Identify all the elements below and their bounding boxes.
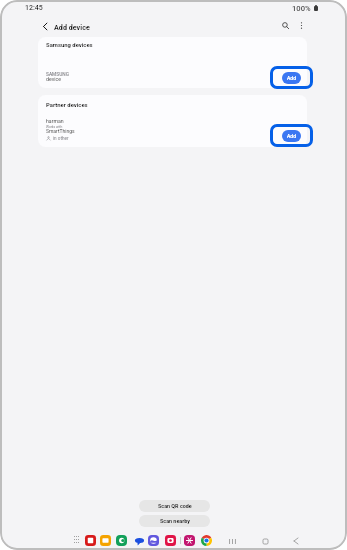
staticText: in other [53, 136, 69, 141]
button[interactable]: Home [259, 535, 271, 547]
staticText: Works with [46, 125, 63, 129]
button[interactable]: Chrome [201, 535, 212, 546]
staticText: SmartThings [46, 128, 75, 134]
staticText: Scan QR code [158, 503, 192, 509]
button[interactable] [38, 60, 307, 87]
button[interactable]: App [85, 535, 96, 546]
button[interactable]: Scan nearby [139, 515, 210, 527]
staticText: Add device [54, 23, 90, 31]
staticText: device [46, 76, 61, 82]
button[interactable]: Recents [226, 535, 238, 547]
button[interactable]: Scan QR code [139, 500, 210, 512]
staticText: Add [287, 133, 296, 139]
staticText: 100% [292, 4, 311, 13]
button[interactable]: Back [38, 19, 53, 34]
button[interactable]: Internet [148, 535, 159, 546]
button[interactable] [38, 115, 307, 146]
staticText: SAMSUNG [46, 72, 69, 78]
button[interactable]: Camera [165, 535, 176, 546]
button[interactable]: Add [270, 66, 313, 89]
staticText: Scan nearby [160, 518, 190, 524]
button[interactable]: Apps [71, 534, 82, 545]
button[interactable]: Messages [134, 535, 145, 546]
button[interactable]: More options [294, 18, 309, 33]
staticText: harman [46, 118, 64, 124]
button[interactable]: App [184, 535, 195, 546]
button[interactable]: Back [290, 535, 302, 547]
button[interactable]: App [100, 535, 111, 546]
staticText: Partner devices [46, 102, 88, 109]
staticText: 12:45 [25, 4, 43, 12]
staticText: Add [287, 75, 296, 81]
button[interactable]: App [116, 535, 127, 546]
staticText: Samsung devices [46, 42, 93, 49]
button[interactable]: Add [270, 124, 313, 147]
button[interactable]: Search [278, 18, 293, 33]
